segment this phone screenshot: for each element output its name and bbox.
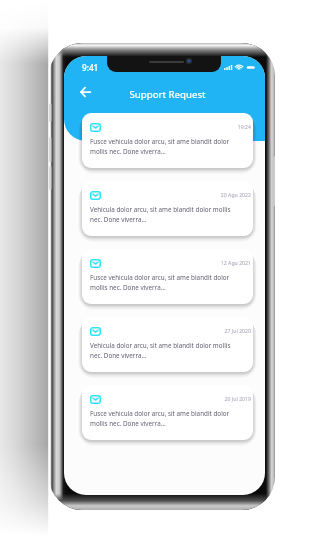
button[interactable]: 12 Agu 2021 [82, 249, 253, 304]
staticText: 9:41 [82, 62, 99, 73]
staticText: 20 Jul 2019 [82, 395, 251, 402]
staticText: Vehicula dolor arcu, sit ame blandit dol… [90, 341, 236, 360]
staticText: Support Request [67, 88, 265, 101]
staticText: Fusce vehicula dolor arcu, sit ame bland… [90, 409, 236, 428]
staticText: 19:24 [82, 123, 251, 130]
staticText: 20 Agu 2022 [82, 191, 251, 198]
button[interactable]: 27 Jul 2020 [82, 317, 253, 372]
button[interactable]: 19:24 [82, 113, 253, 168]
staticText: 12 Agu 2021 [82, 259, 251, 266]
staticText: Vehicula dolor arcu, sit ame blandit dol… [90, 205, 236, 224]
staticText: 27 Jul 2020 [82, 327, 251, 334]
button[interactable]: 20 Jul 2019 [82, 385, 253, 440]
button[interactable]: Back [75, 82, 96, 102]
staticText: Fusce vehicula dolor arcu, sit ame bland… [90, 273, 236, 292]
button[interactable]: 20 Agu 2022 [82, 181, 253, 236]
staticText: Fusce vehicula dolor arcu, sit ame bland… [90, 137, 236, 156]
